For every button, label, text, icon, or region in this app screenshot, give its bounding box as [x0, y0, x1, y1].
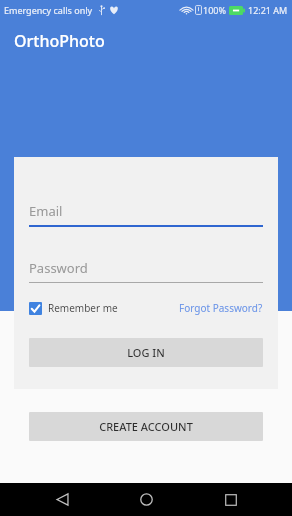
staticText: Emergency calls only: [4, 4, 93, 16]
staticText: 12:21 AM: [248, 4, 288, 16]
button[interactable]: Back: [39, 483, 85, 516]
staticText: Email: [29, 202, 63, 220]
button[interactable]: Forgot Password?: [179, 301, 263, 315]
staticText: Remember me: [48, 301, 118, 315]
staticText: OrthoPhoto: [14, 30, 105, 52]
staticText: LOG IN: [127, 345, 165, 360]
button[interactable]: Remember me: [29, 301, 118, 315]
staticText: Password: [29, 259, 88, 277]
staticText: 100%: [203, 4, 226, 16]
staticText: CREATE ACCOUNT: [99, 419, 193, 434]
button[interactable]: Password: [29, 259, 263, 283]
button[interactable]: Recent apps: [208, 483, 254, 516]
button[interactable]: Home: [123, 483, 169, 516]
button[interactable]: CREATE ACCOUNT: [29, 412, 263, 441]
button[interactable]: LOG IN: [29, 338, 263, 367]
button[interactable]: Email: [29, 202, 263, 227]
staticText: Forgot Password?: [179, 301, 263, 315]
